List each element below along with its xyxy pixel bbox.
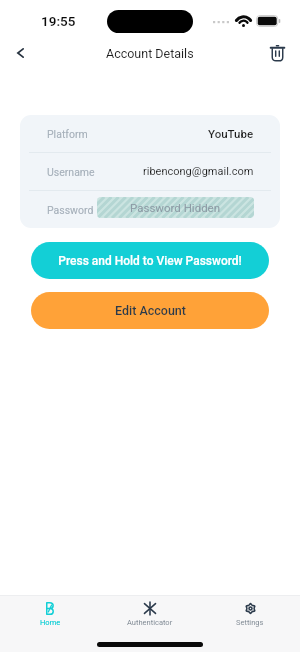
- button[interactable]: Password hidden: [97, 197, 254, 218]
- staticText: 19:55: [41, 13, 76, 29]
- staticText: Password: [47, 204, 94, 216]
- button[interactable]: Delete account: [262, 38, 292, 68]
- staticText: YouTube: [208, 127, 254, 140]
- staticText: Password Hidden: [130, 201, 221, 214]
- staticText: ribencong@gmail.com: [143, 165, 254, 178]
- button[interactable]: Edit Account: [31, 292, 269, 329]
- staticText: Press and Hold to View Password!: [58, 254, 242, 268]
- button[interactable]: Home: [0, 596, 100, 633]
- staticText: Username: [47, 166, 95, 178]
- button[interactable]: Back: [4, 37, 36, 69]
- button[interactable]: Authenticator: [100, 596, 200, 633]
- staticText: Settings: [236, 618, 264, 627]
- staticText: Platform: [47, 128, 88, 140]
- staticText: Edit Account: [115, 303, 186, 318]
- staticText: Account Details: [106, 46, 194, 61]
- staticText: Home: [40, 618, 61, 627]
- button[interactable]: Settings: [200, 596, 300, 633]
- staticText: Authenticator: [127, 618, 173, 627]
- button[interactable]: Press and Hold to View Password!: [31, 242, 269, 279]
